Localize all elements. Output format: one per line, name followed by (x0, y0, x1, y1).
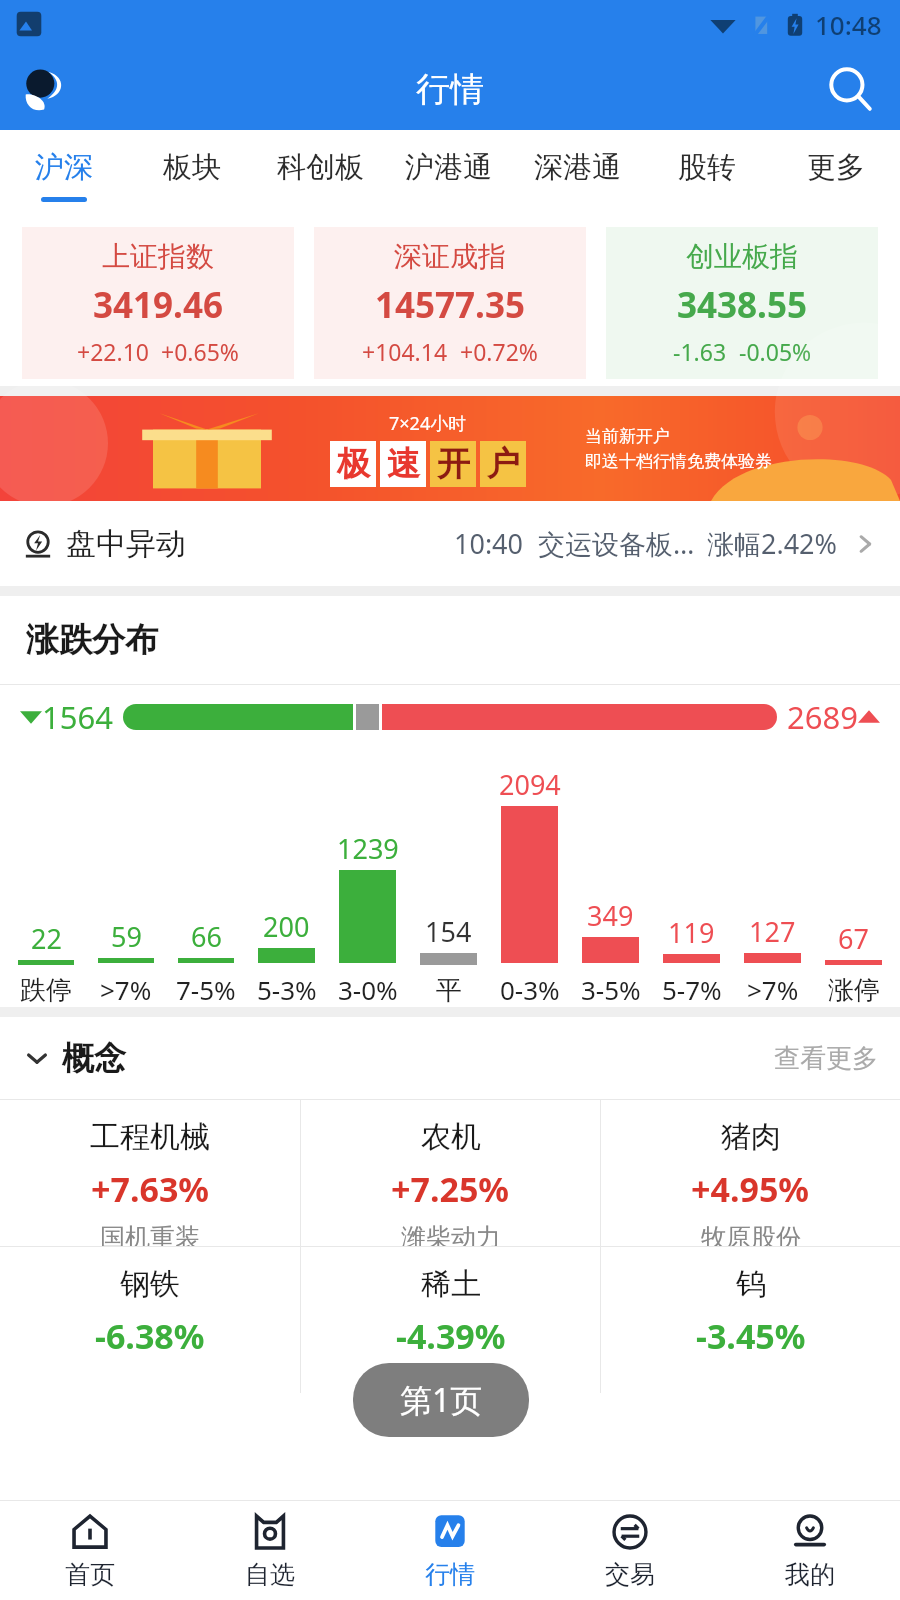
staticText: 查看更多 (774, 1042, 878, 1075)
button[interactable]: 上证指数 (22, 227, 294, 379)
staticText: 深港通 (534, 149, 621, 186)
staticText: 涨跌分布 (26, 619, 158, 661)
staticText: 国机重装 (100, 1222, 200, 1246)
staticText: -0.05% (739, 336, 812, 367)
button[interactable]: 板块 (128, 130, 256, 220)
staticText: 更多 (807, 149, 865, 186)
staticText: 创业板指 (686, 239, 798, 274)
staticText: 上证指数 (102, 239, 214, 274)
button[interactable]: 沪深 (0, 130, 128, 220)
staticText: 板块 (163, 149, 221, 186)
staticText: 我的 (785, 1559, 835, 1590)
staticText: 涨停 (828, 974, 880, 1007)
button[interactable]: 稀土 (301, 1247, 600, 1393)
staticText: -3.45% (696, 1313, 806, 1359)
staticText: +0.65% (161, 336, 239, 367)
staticText: 行情 (416, 68, 484, 111)
staticText: 跌停 (20, 974, 72, 1007)
staticText: 22 (31, 920, 62, 957)
staticText: 2094 (499, 766, 561, 803)
button[interactable]: Search (824, 63, 876, 115)
button[interactable]: 盘中异动 (0, 501, 900, 586)
staticText: -4.39% (396, 1313, 506, 1359)
staticText: 1239 (337, 830, 399, 867)
staticText: 行情 (425, 1559, 475, 1590)
staticText: 3-0% (338, 972, 398, 1007)
staticText: 即送十档行情免费体验券 (585, 451, 772, 472)
button[interactable]: 查看更多 (774, 1042, 878, 1075)
staticText: 67 (838, 920, 869, 957)
button[interactable]: 首页 (0, 1501, 180, 1600)
staticText: 速 (387, 443, 420, 485)
staticText: 200 (263, 908, 310, 945)
staticText: 自选 (245, 1559, 295, 1590)
button[interactable]: 创业板指 (606, 227, 878, 379)
staticText: 平 (436, 974, 462, 1007)
staticText: 沪深 (35, 149, 93, 186)
staticText: 首页 (65, 1559, 115, 1590)
staticText: 概念 (62, 1038, 126, 1078)
staticText: 猪肉 (721, 1118, 781, 1156)
staticText: -6.38% (95, 1313, 205, 1359)
button[interactable]: 自选 (180, 1501, 360, 1600)
staticText: 钢铁 (120, 1265, 180, 1303)
staticText: 5-3% (257, 972, 317, 1007)
staticText: 工程机械 (90, 1118, 210, 1156)
button[interactable]: 更多 (771, 130, 900, 220)
staticText: 开 (437, 443, 470, 485)
staticText: 稀土 (421, 1265, 481, 1303)
staticText: 盘中异动 (66, 525, 186, 563)
staticText: 59 (111, 918, 142, 955)
staticText: 349 (587, 897, 634, 934)
staticText: 3438.55 (677, 281, 807, 329)
staticText: 第1页 (400, 1378, 483, 1422)
button[interactable]: 沪港通 (384, 130, 513, 220)
button[interactable]: 猪肉 (601, 1100, 900, 1246)
button[interactable]: 深证成指 (314, 227, 586, 379)
staticText: 钨 (736, 1265, 766, 1303)
staticText: 潍柴动力 (401, 1222, 501, 1246)
button[interactable]: Logo (16, 62, 70, 116)
button[interactable]: 钢铁 (0, 1247, 300, 1393)
staticText: 127 (749, 913, 796, 950)
staticText: 10:48 (815, 7, 882, 42)
staticText: 股转 (678, 149, 736, 186)
button[interactable]: 交易 (540, 1501, 720, 1600)
staticText: >7% (100, 972, 152, 1007)
staticText: 7-5% (176, 972, 236, 1007)
button[interactable]: 农机 (301, 1100, 600, 1246)
staticText: +104.14 (362, 336, 448, 367)
staticText: 户 (487, 443, 520, 485)
staticText: -1.63 (673, 336, 727, 367)
staticText: 交运设备板… (538, 525, 695, 562)
button[interactable]: 我的 (720, 1501, 900, 1600)
staticText: 3-5% (581, 972, 641, 1007)
staticText: 10:40 (454, 525, 524, 562)
staticText: +22.10 (77, 336, 149, 367)
staticText: 极 (337, 443, 370, 485)
staticText: +7.25% (391, 1166, 510, 1212)
staticText: 2689 (787, 696, 858, 738)
staticText: +7.63% (91, 1166, 210, 1212)
staticText: 深证成指 (394, 239, 506, 274)
staticText: 154 (425, 913, 472, 950)
button[interactable]: 行情 (360, 1501, 540, 1600)
staticText: +4.95% (691, 1166, 810, 1212)
staticText: 7×24小时 (389, 411, 467, 436)
staticText: 涨幅2.42% (707, 525, 838, 562)
button[interactable]: 概念 (22, 1038, 126, 1078)
staticText: 牧原股份 (701, 1222, 801, 1246)
button[interactable]: 科创板 (256, 130, 384, 220)
staticText: 交易 (605, 1559, 655, 1590)
button[interactable]: 钨 (601, 1247, 900, 1393)
button[interactable]: 深港通 (513, 130, 642, 220)
staticText: 5-7% (662, 972, 722, 1007)
staticText: 当前新开户 (585, 426, 670, 447)
staticText: 66 (191, 918, 222, 955)
button[interactable]: 工程机械 (0, 1100, 300, 1246)
button[interactable]: 7×24小时 (0, 396, 900, 501)
staticText: 119 (668, 914, 715, 951)
button[interactable]: 股转 (642, 130, 771, 220)
staticText: 农机 (421, 1118, 481, 1156)
staticText: 科创板 (277, 149, 364, 186)
